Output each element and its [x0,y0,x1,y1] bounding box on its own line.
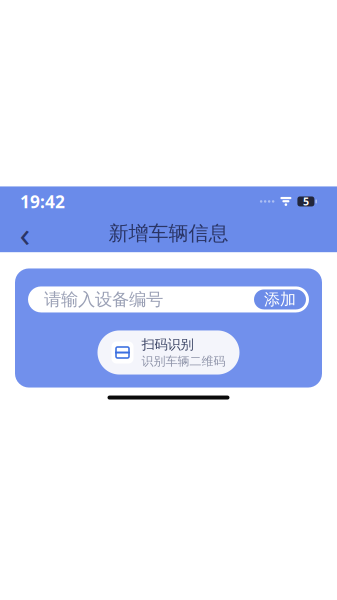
staticText: 添加 [264,290,296,309]
staticText: ‹ [19,210,30,256]
button[interactable]: Back [8,216,42,250]
button[interactable]: 扫码识别 [97,330,239,374]
staticText: 19:42 [20,190,65,213]
button[interactable]: 添加 [254,289,306,309]
staticText: 请输入设备编号 [44,289,163,310]
staticText: 识别车辆二维码 [141,354,225,368]
staticText: 扫码识别 [141,336,193,353]
staticText: 新增车辆信息 [108,221,228,246]
staticText: 5 [303,194,309,209]
